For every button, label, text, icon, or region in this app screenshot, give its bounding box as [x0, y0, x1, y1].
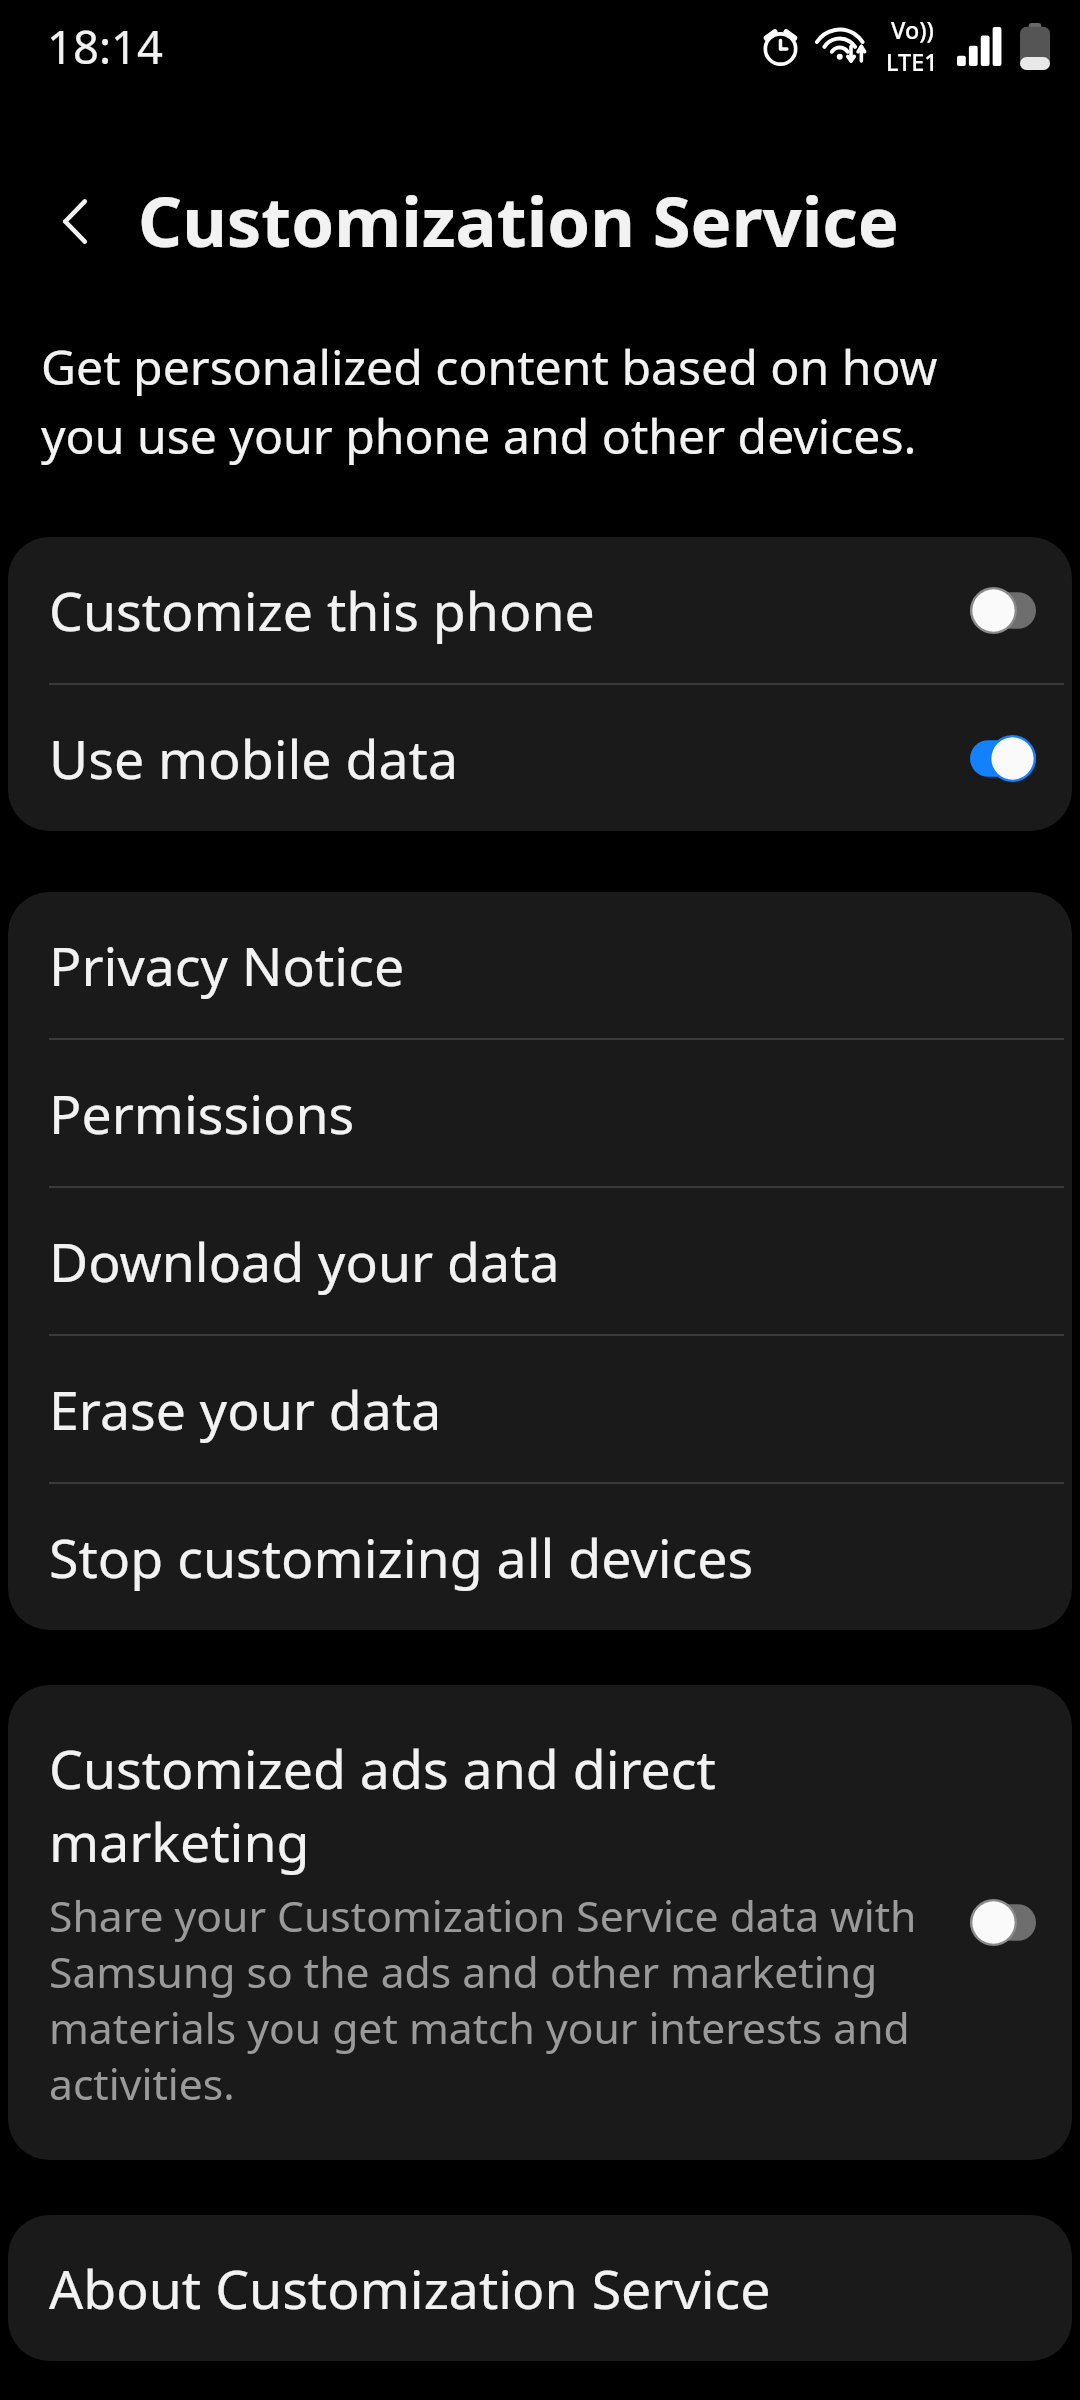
staticText: Vo))	[891, 14, 934, 46]
staticText: Use mobile data	[49, 722, 970, 795]
button[interactable]: About Customization Service	[8, 2215, 1072, 2361]
button[interactable]: On	[970, 735, 1036, 782]
staticText: Download your data	[49, 1225, 560, 1298]
button[interactable]: Erase your data	[8, 1336, 1072, 1482]
staticText: 18:14	[47, 15, 163, 77]
staticText: Share your Customization Service data wi…	[49, 1886, 942, 2113]
staticText: Customize this phone	[49, 574, 970, 647]
staticText: Customization Service	[138, 174, 899, 268]
staticText: About Customization Service	[49, 2252, 771, 2325]
button[interactable]: Navigate up	[17, 161, 138, 282]
button[interactable]: Off	[970, 587, 1036, 634]
staticText: Stop customizing all devices	[49, 1521, 754, 1594]
staticText: Permissions	[49, 1077, 355, 1150]
button[interactable]: Permissions	[8, 1040, 1072, 1186]
button[interactable]: Use mobile data	[8, 685, 1072, 831]
button[interactable]: Customize this phone	[8, 537, 1072, 683]
staticText: Privacy Notice	[49, 929, 405, 1002]
button[interactable]: Off	[970, 1899, 1036, 1946]
staticText: Customized ads and direct marketing	[49, 1732, 942, 1878]
button[interactable]: Stop customizing all devices	[8, 1484, 1072, 1630]
staticText: Get personalized content based on how yo…	[41, 334, 1019, 468]
button[interactable]: Privacy Notice	[8, 892, 1072, 1038]
button[interactable]: Customized ads and direct marketing	[8, 1685, 1072, 2160]
staticText: Erase your data	[49, 1373, 442, 1446]
button[interactable]: Download your data	[8, 1188, 1072, 1334]
staticText: LTE1	[886, 46, 938, 78]
